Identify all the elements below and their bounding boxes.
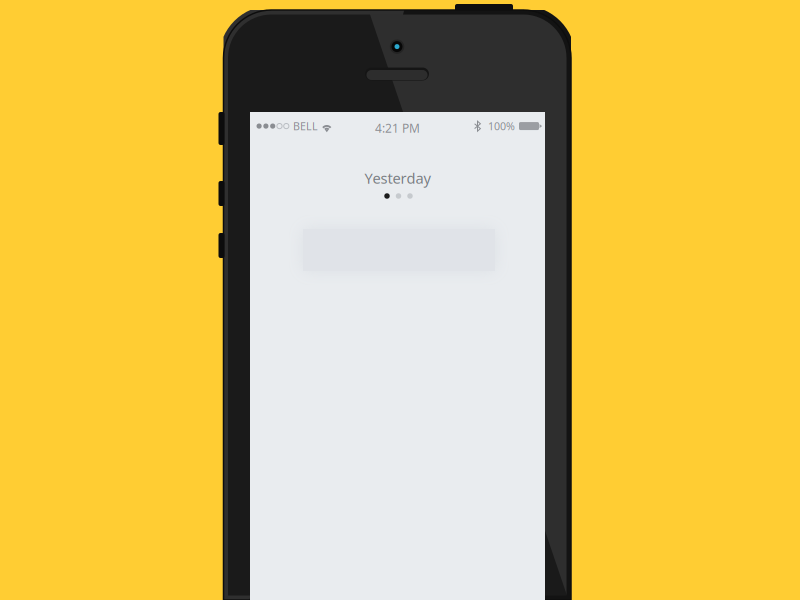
staticText: Yesterday (364, 168, 430, 188)
staticText: BELL (293, 119, 318, 133)
staticText: 4:21 PM (375, 120, 420, 136)
button[interactable]: Page 1 of 3 (251, 185, 546, 207)
staticText: 100% (488, 119, 515, 133)
